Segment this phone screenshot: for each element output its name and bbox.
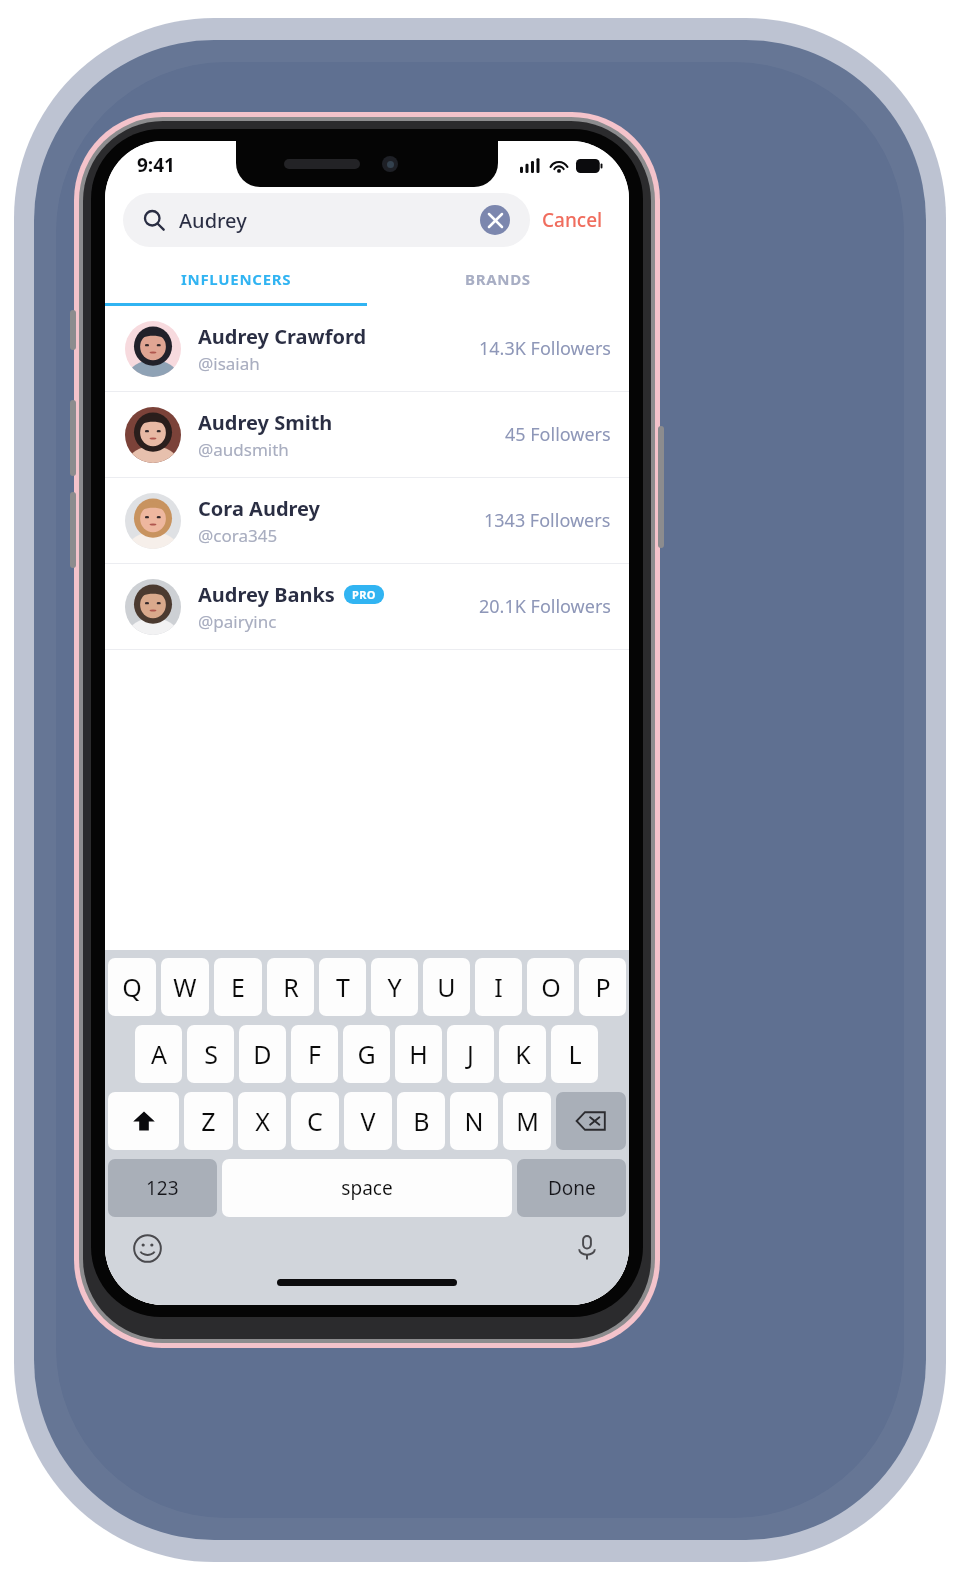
staticText: @cora345	[198, 524, 278, 547]
staticText: 9:41	[137, 152, 175, 178]
button[interactable]: T	[319, 958, 366, 1016]
staticText: space	[341, 1175, 393, 1201]
button[interactable]: K	[499, 1025, 546, 1083]
button[interactable]: D	[239, 1025, 286, 1083]
staticText: Done	[548, 1175, 596, 1201]
staticText: 20.1K Followers	[479, 594, 611, 619]
staticText: A	[151, 1037, 167, 1071]
staticText: H	[409, 1037, 428, 1071]
button[interactable]: 123	[108, 1159, 217, 1217]
button[interactable]: Y	[371, 958, 418, 1016]
staticText: Y	[387, 970, 402, 1004]
staticText: P	[595, 970, 611, 1004]
staticText: E	[231, 970, 245, 1004]
button[interactable]: V	[344, 1092, 392, 1150]
button[interactable]: G	[343, 1025, 390, 1083]
staticText: Audrey Crawford	[198, 323, 367, 350]
button[interactable]: W	[161, 958, 209, 1016]
staticText: N	[464, 1104, 484, 1138]
button[interactable]: I	[475, 958, 522, 1016]
button[interactable]: Audrey Crawford	[105, 306, 629, 391]
button[interactable]: A	[135, 1025, 182, 1083]
staticText: Cancel	[542, 207, 603, 233]
button[interactable]: Audrey	[123, 193, 530, 247]
staticText: PRO	[352, 587, 376, 602]
staticText: V	[360, 1104, 376, 1138]
staticText: I	[494, 970, 503, 1004]
staticText: Cora Audrey	[198, 495, 321, 522]
staticText: Q	[122, 970, 142, 1004]
staticText: Audrey	[179, 207, 247, 234]
staticText: INFLUENCERS	[181, 269, 292, 289]
staticText: F	[308, 1037, 321, 1071]
staticText: R	[283, 970, 299, 1004]
staticText: J	[467, 1037, 474, 1071]
staticText: T	[336, 970, 350, 1004]
button[interactable]: Z	[184, 1092, 233, 1150]
staticText: 123	[146, 1175, 179, 1201]
button[interactable]: Audrey Banks	[105, 564, 629, 649]
button[interactable]: Clear search	[480, 205, 510, 235]
button[interactable]: H	[395, 1025, 442, 1083]
button[interactable]: C	[291, 1092, 339, 1150]
button[interactable]: M	[503, 1092, 551, 1150]
staticText: G	[357, 1037, 376, 1071]
staticText: M	[516, 1104, 539, 1138]
button[interactable]: O	[527, 958, 574, 1016]
staticText: 14.3K Followers	[479, 336, 611, 361]
staticText: U	[437, 970, 456, 1004]
staticText: @audsmith	[198, 438, 289, 461]
button[interactable]: BRANDS	[367, 255, 629, 303]
button[interactable]: Emoji keyboard	[127, 1228, 167, 1268]
staticText: B	[413, 1104, 430, 1138]
staticText: Z	[201, 1104, 216, 1138]
staticText: S	[204, 1037, 218, 1071]
button[interactable]: INFLUENCERS	[105, 255, 367, 303]
button[interactable]: L	[551, 1025, 598, 1083]
staticText: L	[568, 1037, 582, 1071]
button[interactable]: N	[450, 1092, 498, 1150]
button[interactable]: X	[238, 1092, 286, 1150]
button[interactable]: B	[397, 1092, 445, 1150]
staticText: D	[253, 1037, 272, 1071]
staticText: @pairyinc	[198, 610, 277, 633]
staticText: O	[541, 970, 561, 1004]
button[interactable]: Backspace	[556, 1092, 626, 1150]
staticText: BRANDS	[465, 269, 531, 289]
staticText: Audrey Smith	[198, 409, 333, 436]
button[interactable]: P	[579, 958, 626, 1016]
button[interactable]: E	[214, 958, 262, 1016]
staticText: Audrey Banks	[198, 581, 335, 608]
button[interactable]: R	[267, 958, 314, 1016]
staticText: C	[307, 1104, 323, 1138]
button[interactable]: Shift	[108, 1092, 179, 1150]
button[interactable]: space	[222, 1159, 512, 1217]
button[interactable]: Done	[517, 1159, 626, 1217]
button[interactable]: F	[291, 1025, 338, 1083]
staticText: X	[255, 1104, 270, 1138]
button[interactable]: S	[187, 1025, 234, 1083]
staticText: 45 Followers	[505, 422, 611, 447]
staticText: @isaiah	[198, 352, 260, 375]
button[interactable]: Q	[108, 958, 156, 1016]
staticText: W	[173, 970, 197, 1004]
button[interactable]: Voice input	[567, 1228, 607, 1268]
button[interactable]: U	[423, 958, 470, 1016]
button[interactable]: Cancel	[530, 199, 615, 241]
staticText: 1343 Followers	[484, 508, 611, 533]
button[interactable]: J	[447, 1025, 494, 1083]
button[interactable]: Cora Audrey	[105, 478, 629, 563]
button[interactable]: Audrey Smith	[105, 392, 629, 477]
staticText: K	[515, 1037, 531, 1071]
